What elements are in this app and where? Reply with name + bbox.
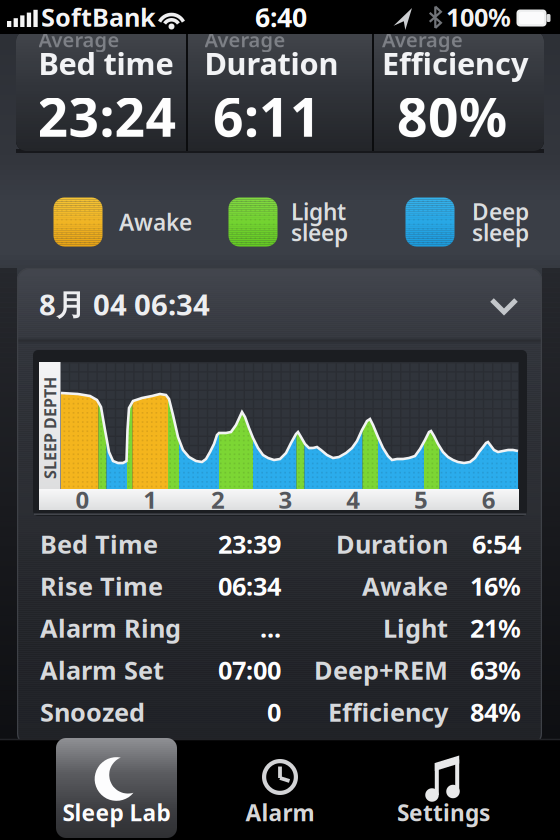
- staticText: Duration: [204, 43, 338, 83]
- staticText: Alarm Ring: [40, 611, 181, 645]
- staticText: Light: [291, 196, 346, 226]
- staticText: 0: [75, 484, 89, 515]
- staticText: Average: [204, 26, 285, 53]
- staticText: 23:24: [37, 81, 176, 151]
- staticText: 23:39: [218, 527, 281, 561]
- button[interactable]: Settings: [362, 738, 525, 838]
- staticText: sleep: [291, 217, 348, 247]
- staticText: Duration: [336, 527, 448, 561]
- button[interactable]: 8月 04: [17, 268, 542, 338]
- staticText: Awake: [362, 569, 448, 603]
- staticText: Alarm Set: [40, 653, 164, 687]
- staticText: Sleep Lab: [62, 797, 170, 827]
- staticText: 3: [279, 484, 293, 515]
- staticText: 8月 04: [39, 284, 127, 323]
- staticText: 6:11: [213, 81, 321, 151]
- staticText: ...: [260, 611, 281, 645]
- button[interactable]: Sleep Lab: [56, 738, 177, 838]
- staticText: Awake: [119, 207, 192, 237]
- staticText: Light: [383, 611, 448, 645]
- staticText: Efficiency: [328, 695, 448, 729]
- staticText: 0: [267, 695, 281, 729]
- staticText: 100%: [446, 0, 511, 34]
- staticText: Settings: [397, 797, 490, 827]
- staticText: 1: [143, 484, 157, 515]
- staticText: 5: [414, 484, 428, 515]
- staticText: Snoozed: [40, 695, 145, 729]
- staticText: Efficiency: [382, 43, 529, 83]
- staticText: Alarm: [245, 797, 314, 827]
- staticText: 06:34: [134, 284, 210, 323]
- staticText: Rise Time: [40, 569, 163, 603]
- staticText: Average: [38, 26, 119, 53]
- staticText: Average: [382, 26, 463, 53]
- staticText: 6:54: [472, 527, 521, 561]
- staticText: Deep+REM: [314, 653, 448, 687]
- staticText: SLEEP DEPTH: [0, 417, 101, 439]
- staticText: 21%: [470, 611, 521, 645]
- staticText: Bed time: [38, 43, 173, 83]
- staticText: Deep: [472, 196, 529, 226]
- staticText: 6:40: [255, 0, 307, 35]
- staticText: 4: [346, 484, 360, 515]
- button[interactable]: Alarm: [198, 738, 361, 838]
- staticText: 6: [482, 484, 496, 515]
- staticText: 07:00: [218, 653, 281, 687]
- staticText: sleep: [472, 217, 529, 247]
- staticText: 06:34: [218, 569, 281, 603]
- staticText: 84%: [470, 695, 521, 729]
- staticText: SoftBank: [41, 0, 156, 34]
- staticText: 80%: [397, 81, 507, 151]
- staticText: 2: [211, 484, 225, 515]
- staticText: Bed Time: [40, 527, 158, 561]
- staticText: 63%: [470, 653, 521, 687]
- staticText: 16%: [470, 569, 521, 603]
